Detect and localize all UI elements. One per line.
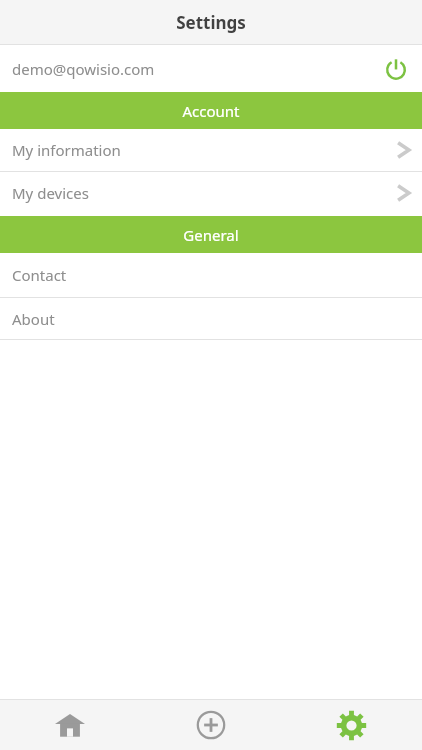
staticText: My devices (12, 183, 89, 203)
button[interactable]: demo@qowisio.com (0, 45, 422, 92)
button[interactable]: My devices (0, 172, 422, 214)
button[interactable]: Contact (0, 253, 422, 297)
button[interactable]: Log out (380, 53, 412, 85)
staticText: demo@qowisio.com (12, 59, 155, 79)
button[interactable]: About (0, 298, 422, 339)
staticText: Account (182, 101, 240, 121)
staticText: Contact (12, 265, 67, 285)
staticText: About (12, 309, 55, 329)
staticText: Settings (0, 11, 422, 34)
button[interactable]: Settings (281, 700, 422, 750)
button[interactable]: My information (0, 129, 422, 171)
button[interactable]: Add (140, 700, 281, 750)
staticText: General (183, 225, 239, 245)
staticText: My information (12, 140, 121, 160)
button[interactable]: Home (0, 700, 140, 750)
